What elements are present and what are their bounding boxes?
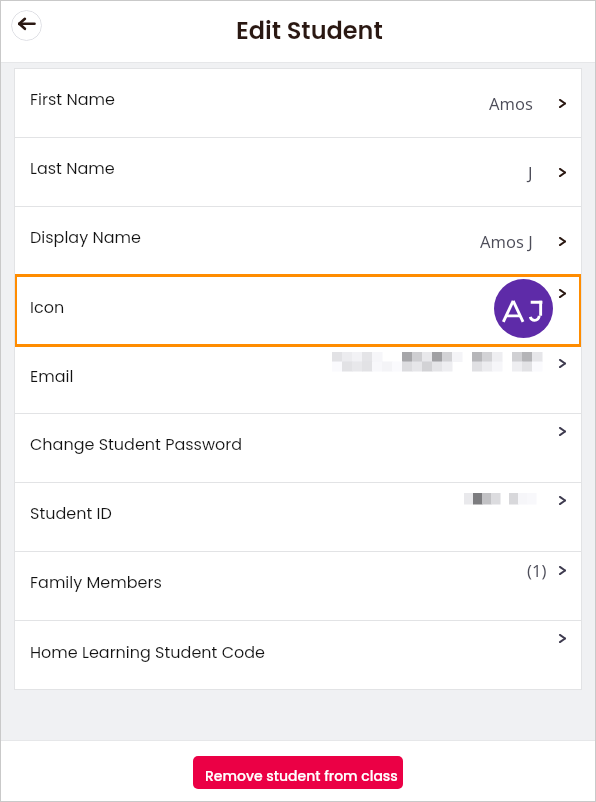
staticText: Change Student Password bbox=[30, 433, 243, 455]
button[interactable]: Home Learning Student Code bbox=[14, 621, 582, 690]
button[interactable]: Family Members bbox=[14, 552, 582, 620]
button[interactable]: First Name bbox=[14, 68, 582, 137]
staticText: Amos J bbox=[480, 230, 533, 252]
staticText: J bbox=[528, 161, 533, 183]
button[interactable]: Student ID bbox=[14, 483, 582, 551]
button[interactable]: Change Student Password bbox=[14, 414, 582, 482]
button[interactable]: Icon bbox=[14, 274, 582, 347]
button[interactable]: Remove student from class bbox=[193, 756, 403, 789]
staticText: Student ID bbox=[30, 502, 112, 524]
staticText: Edit Student bbox=[236, 14, 383, 48]
staticText: Last Name bbox=[30, 157, 115, 179]
staticText: Display Name bbox=[30, 226, 141, 248]
button[interactable]: Last Name bbox=[14, 138, 582, 206]
button[interactable]: Back bbox=[11, 10, 42, 41]
button[interactable]: Display Name bbox=[14, 207, 582, 274]
staticText: Icon bbox=[30, 296, 65, 318]
staticText: Amos bbox=[489, 92, 533, 114]
button[interactable]: Email bbox=[14, 347, 582, 413]
staticText: First Name bbox=[30, 88, 115, 110]
staticText: Email bbox=[30, 365, 74, 387]
staticText: Family Members bbox=[30, 571, 162, 593]
staticText: Remove student from class bbox=[205, 766, 398, 786]
staticText: Home Learning Student Code bbox=[30, 641, 265, 663]
staticText: (1) bbox=[527, 559, 547, 581]
